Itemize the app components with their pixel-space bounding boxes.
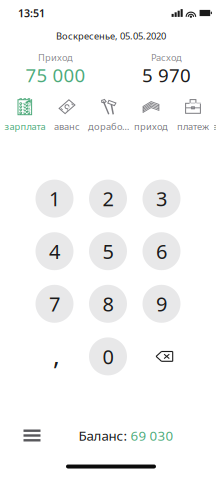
button[interactable]: зарплата — [4, 90, 46, 134]
staticText: 0 — [102, 343, 113, 370]
button[interactable]: 0 — [89, 337, 127, 375]
staticText: 13:51 — [18, 6, 45, 20]
staticText: 8 — [102, 290, 113, 317]
staticText: 1 — [49, 185, 60, 212]
staticText: а — [212, 120, 217, 133]
staticText: аванс — [54, 120, 80, 133]
staticText: Баланс: — [78, 427, 127, 444]
staticText: 7 — [49, 290, 60, 317]
staticText: Воскресенье, 05.05.2020 — [56, 30, 166, 42]
button[interactable]: доработо... — [88, 90, 130, 134]
button[interactable]: Next category — [214, 90, 216, 134]
button[interactable]: Delete — [142, 337, 180, 375]
staticText: 9 — [156, 290, 167, 317]
staticText: 6 — [156, 238, 167, 264]
button[interactable]: Баланс: — [78, 420, 173, 450]
staticText: 4 — [49, 238, 60, 264]
staticText: Приход — [38, 51, 73, 64]
button[interactable]: 2 — [89, 180, 127, 218]
staticText: Расход — [151, 51, 182, 64]
button[interactable]: аванс — [46, 90, 88, 134]
button[interactable]: 3 — [142, 180, 180, 218]
staticText: зарплата — [4, 120, 45, 133]
staticText: 5 970 — [142, 63, 191, 87]
button[interactable]: 7 — [35, 285, 73, 323]
staticText: , — [53, 339, 60, 372]
button[interactable]: 6 — [142, 232, 180, 270]
staticText: приход — [134, 120, 168, 133]
button[interactable]: 5 — [89, 232, 127, 270]
button[interactable]: приход — [130, 90, 172, 134]
staticText: 3 — [156, 185, 167, 212]
staticText: платеж — [177, 120, 209, 133]
button[interactable]: Menu — [16, 420, 48, 450]
staticText: доработо... — [88, 120, 130, 133]
button[interactable]: 8 — [89, 285, 127, 323]
button[interactable]: 1 — [35, 180, 73, 218]
button[interactable]: 4 — [35, 232, 73, 270]
button[interactable]: 9 — [142, 285, 180, 323]
staticText: 2 — [102, 185, 113, 212]
button[interactable]: платеж — [172, 90, 214, 134]
staticText: 5 — [102, 238, 113, 264]
button[interactable]: Decimal comma — [35, 337, 73, 375]
staticText: 75 000 — [25, 63, 85, 87]
staticText: 69 030 — [130, 427, 173, 444]
